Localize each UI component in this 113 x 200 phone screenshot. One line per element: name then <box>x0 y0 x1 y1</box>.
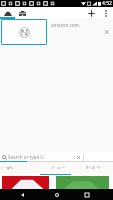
staticText: Search or type U <box>8 154 44 160</box>
staticText: 9·‹ 4:'·?·· <box>86 165 102 171</box>
button[interactable]: Search or type U <box>0 152 113 162</box>
button[interactable]: Clear text <box>74 153 83 162</box>
button[interactable]: Home <box>50 189 63 200</box>
button[interactable]: amazon.com <box>0 19 113 45</box>
button[interactable]: Open tabs <box>0 7 15 19</box>
button[interactable]: Incognito tabs <box>15 7 30 19</box>
button[interactable]: More options <box>99 7 113 19</box>
staticText: › · ·gfx <box>1 165 13 171</box>
button[interactable]: Back <box>16 189 29 200</box>
staticText: 4:52 <box>102 0 112 7</box>
button[interactable]: Green card <box>56 176 109 189</box>
button[interactable]: Close tab <box>102 27 112 37</box>
button[interactable]: New tab <box>84 7 99 19</box>
staticText: l· · a ‣· <box>52 165 65 171</box>
staticText: amazon.com <box>51 22 79 28</box>
button[interactable]: Recent apps <box>80 189 93 200</box>
button[interactable]: Red card <box>2 176 49 189</box>
